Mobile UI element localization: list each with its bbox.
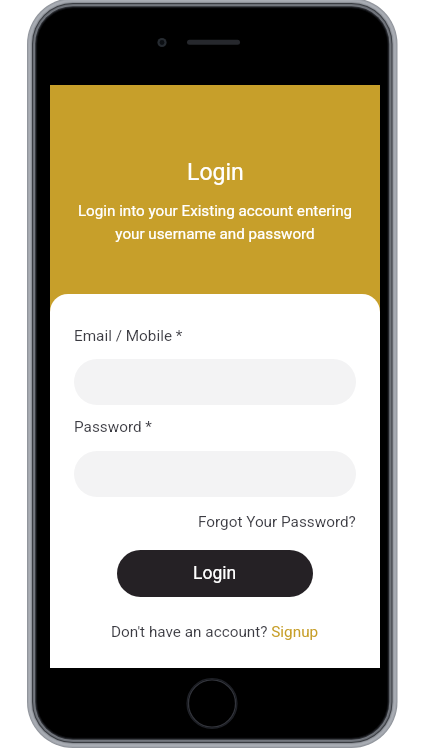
staticText: Login — [193, 563, 237, 584]
button[interactable]: Don't have an account? Signup — [111, 623, 319, 641]
staticText: Password * — [74, 418, 152, 436]
staticText: Login into your Existing account enterin… — [70, 202, 360, 243]
staticText: Don't have an account? Signup — [111, 623, 319, 641]
staticText: Email / Mobile * — [74, 327, 183, 345]
button[interactable]: Login — [117, 550, 313, 597]
staticText: Login — [187, 159, 244, 186]
button[interactable]: Forgot Your Password? — [198, 513, 356, 531]
button[interactable]: Home — [188, 679, 236, 727]
staticText: Forgot Your Password? — [198, 513, 356, 531]
